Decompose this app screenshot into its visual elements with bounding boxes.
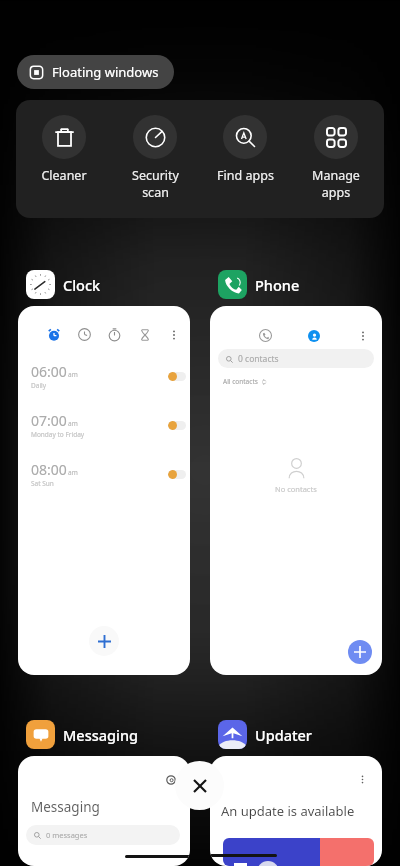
staticText: 08:00 [31,460,67,479]
button[interactable]: Phone [210,270,300,299]
button[interactable]: Find apps [203,100,287,184]
staticText: All contacts [223,377,258,386]
staticText: Manage apps [312,167,360,200]
button[interactable]: 07:00 [31,411,186,439]
button[interactable]: 0 contacts [218,349,374,368]
staticText: 06:00 [31,362,67,381]
staticText: Monday to Friday [31,430,85,439]
button[interactable]: 06:00 [18,306,190,675]
button[interactable]: Messaging [18,720,139,749]
staticText: Security scan [132,167,179,200]
staticText: am [68,419,78,428]
button[interactable]: Close [175,761,224,810]
button[interactable]: Security scan [113,100,197,200]
staticText: am [68,370,78,379]
staticText: No contacts [275,484,317,494]
button[interactable]: Add contact [348,640,372,664]
staticText: Cleaner [41,167,87,184]
button[interactable]: Floating windows [17,55,174,89]
button[interactable]: 06:00 [31,362,186,390]
button[interactable]: 08:00 [31,460,186,488]
staticText: Find apps [217,167,274,184]
button[interactable]: An update is available [210,756,382,866]
staticText: Sat Sun [31,479,54,488]
button[interactable]: Cleaner [22,100,106,184]
staticText: am [68,468,78,477]
staticText: Messaging [63,725,139,745]
button[interactable]: 0 contacts [210,306,382,675]
button[interactable]: Messaging [18,756,190,866]
staticText: 0 messages [46,830,88,840]
staticText: Clock [63,275,101,295]
staticText: Phone [255,275,300,295]
staticText: 0 contacts [238,353,279,365]
staticText: Daily [31,381,47,390]
button[interactable]: Updater [210,720,312,749]
button[interactable]: 0 messages [26,825,180,845]
staticText: Updater [255,725,312,745]
staticText: An update is available [221,802,355,820]
button[interactable]: Add alarm [89,626,119,656]
staticText: 07:00 [31,411,67,430]
staticText: Floating windows [52,63,159,81]
button[interactable]: Manage apps [294,100,378,200]
staticText: Messaging [31,798,100,816]
button[interactable]: Clock [18,270,101,299]
